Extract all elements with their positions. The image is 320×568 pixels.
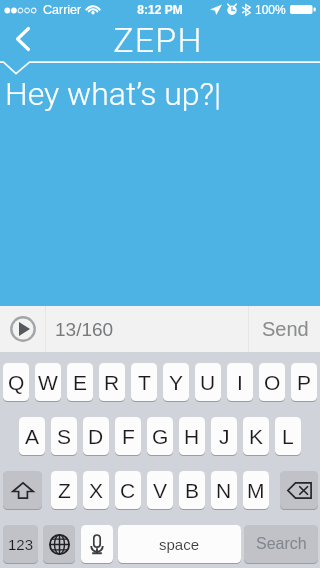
button[interactable]: Search [244,525,318,563]
staticText: R [104,371,120,394]
button[interactable]: Play [0,306,45,352]
button[interactable]: V [147,471,173,509]
staticText: C [120,479,136,502]
button[interactable]: I [227,363,253,401]
button[interactable]: J [211,417,237,455]
button[interactable]: 123 [3,525,38,563]
button[interactable]: H [179,417,205,455]
staticText: space [159,536,200,553]
staticText: A [25,425,40,448]
button[interactable]: P [291,363,317,401]
staticText: O [264,371,281,394]
staticText: 123 [8,536,34,553]
button[interactable]: U [195,363,221,401]
button[interactable]: B [179,471,205,509]
other: Switch keyboard [49,534,70,555]
staticText: ZEPH [0,20,318,60]
button[interactable]: L [275,417,301,455]
staticText: Carrier [43,3,82,17]
staticText: 8:12 PM [0,3,320,16]
button[interactable]: O [259,363,285,401]
staticText: Z [58,479,71,502]
staticText: N [216,479,232,502]
button[interactable]: C [115,471,141,509]
button[interactable]: T [131,363,157,401]
staticText: L [282,425,294,448]
button[interactable]: space [118,525,241,563]
staticText: Q [8,371,25,394]
staticText: V [153,479,168,502]
button[interactable]: F [115,417,141,455]
staticText: K [249,425,264,448]
staticText: X [89,479,104,502]
staticText: 100% [255,3,286,16]
other: Shift [12,482,34,499]
button[interactable]: D [83,417,109,455]
button[interactable]: R [99,363,125,401]
button[interactable]: Dictate [81,525,113,563]
staticText: H [184,425,200,448]
other: Dictate [89,534,105,555]
button[interactable]: S [51,417,77,455]
button[interactable]: Switch keyboard [43,525,75,563]
button[interactable]: N [211,471,237,509]
button[interactable]: W [35,363,61,401]
staticText: U [200,371,216,394]
button[interactable]: Y [163,363,189,401]
staticText: T [138,371,151,394]
button[interactable]: Backspace [280,471,318,509]
button[interactable]: Back [2,18,44,60]
staticText: Y [169,371,184,394]
staticText: G [152,425,169,448]
staticText: F [122,425,135,448]
staticText: E [73,371,88,394]
button[interactable]: Z [51,471,77,509]
staticText: D [88,425,104,448]
button[interactable]: K [243,417,269,455]
staticText: M [247,479,265,502]
button[interactable]: M [243,471,269,509]
staticText: 13/160 [55,319,114,340]
button[interactable]: A [19,417,45,455]
staticText: S [57,425,72,448]
button[interactable]: Shift [3,471,42,509]
staticText: Send [262,318,309,340]
button[interactable]: Send [249,306,320,352]
staticText: J [219,425,230,448]
button[interactable]: G [147,417,173,455]
staticText: Search [256,535,307,553]
button[interactable]: E [67,363,93,401]
button[interactable]: Q [3,363,29,401]
staticText: Hey what’s up?| [5,75,222,113]
staticText: P [297,371,312,394]
staticText: B [185,479,200,502]
staticText: W [38,371,58,394]
staticText: I [237,371,243,394]
button[interactable]: X [83,471,109,509]
other: Backspace [287,482,312,499]
